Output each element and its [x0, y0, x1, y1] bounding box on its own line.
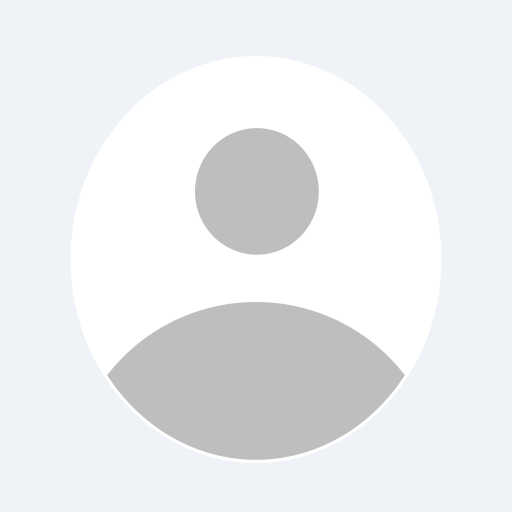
button[interactable]: Profile picture	[0, 0, 512, 512]
